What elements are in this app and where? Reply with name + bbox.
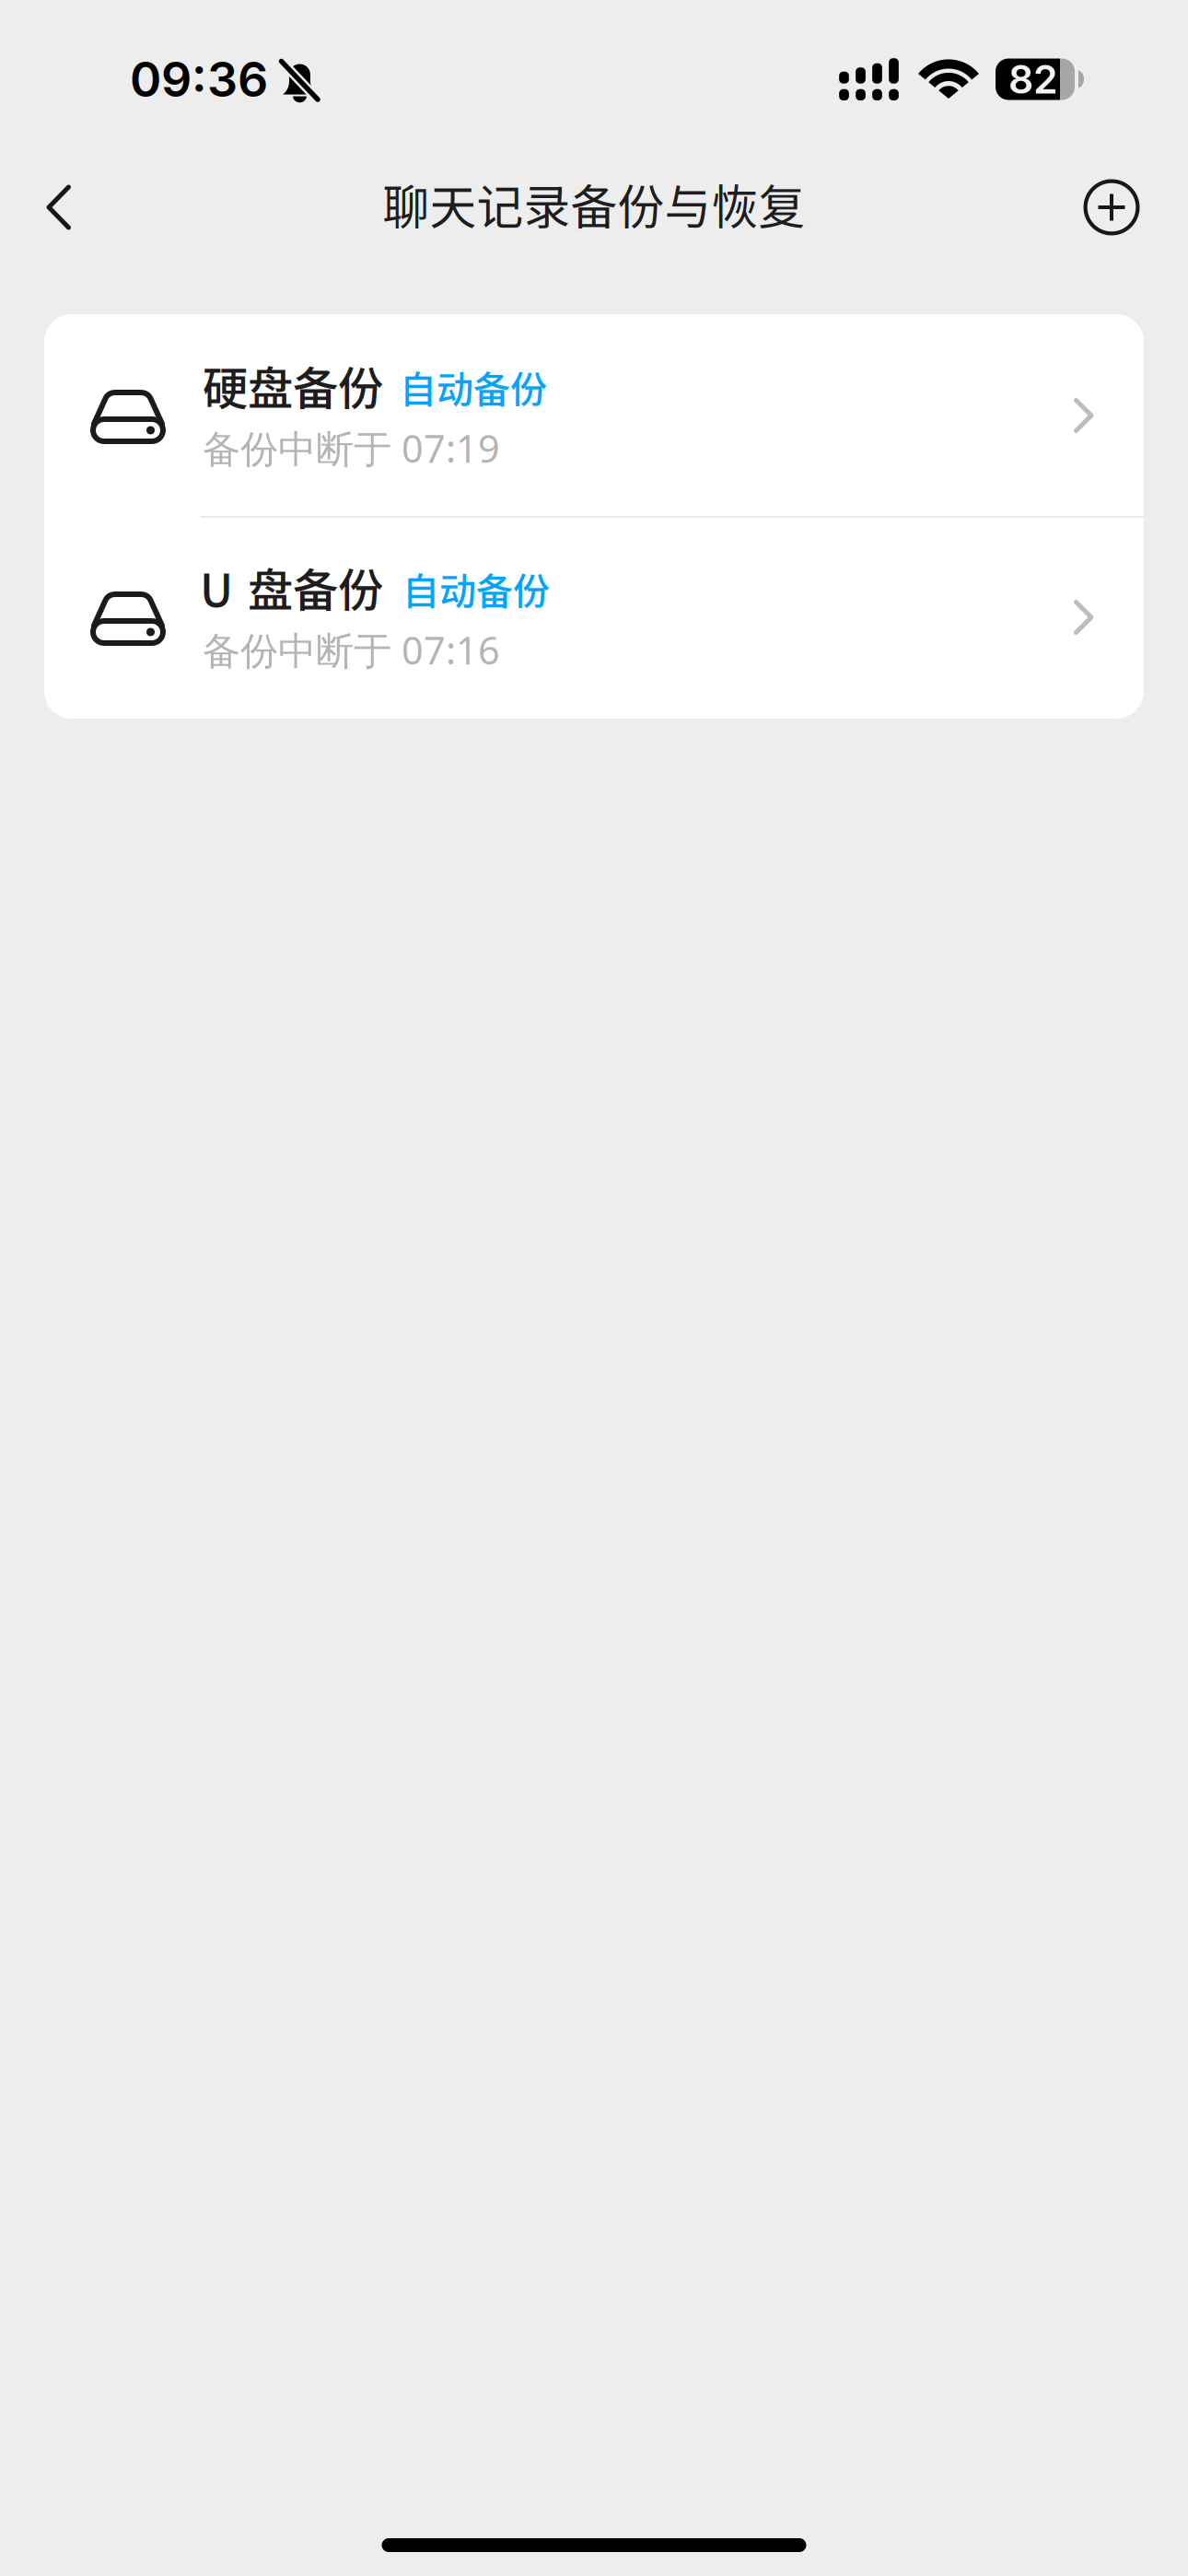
button[interactable]: 添加 <box>1067 161 1156 253</box>
button[interactable]: 硬盘备份 <box>44 315 1144 516</box>
staticText: U 盘备份 <box>200 554 383 620</box>
button[interactable]: U 盘备份 <box>44 516 1144 718</box>
staticText: 硬盘备份 <box>203 352 383 418</box>
staticText: 自动备份 <box>400 360 547 413</box>
button[interactable]: 返回 <box>15 161 103 253</box>
staticText: 09:36 <box>130 50 268 108</box>
staticText: 82 <box>1008 55 1058 103</box>
staticText: 备份中断于 07:19 <box>203 423 500 473</box>
staticText: 备份中断于 07:16 <box>203 624 500 675</box>
staticText: 聊天记录备份与恢复 <box>383 170 805 238</box>
staticText: 自动备份 <box>402 562 550 615</box>
